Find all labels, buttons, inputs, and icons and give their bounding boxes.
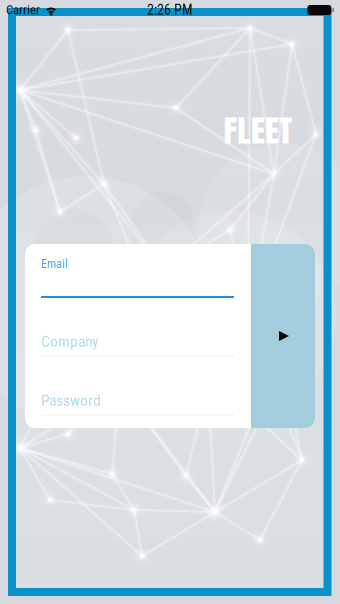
button[interactable]: Submit — [251, 244, 315, 428]
staticText: Password — [41, 391, 101, 409]
staticText: Carrier — [6, 3, 40, 17]
staticText: 2:26 PM — [147, 2, 193, 18]
staticText: Email — [41, 257, 68, 271]
staticText: Company — [41, 332, 98, 350]
staticText: FLEET — [225, 107, 290, 155]
